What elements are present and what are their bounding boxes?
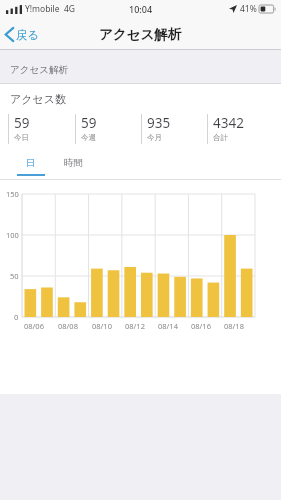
staticText: 59: [14, 114, 30, 132]
staticText: 08/18: [224, 321, 244, 331]
staticText: 今月: [147, 133, 162, 142]
staticText: 08/08: [58, 321, 78, 331]
staticText: 08/12: [125, 321, 145, 331]
staticText: 4342: [213, 114, 244, 132]
staticText: アクセス解析: [99, 26, 182, 43]
staticText: 50: [10, 271, 19, 281]
staticText: 08/06: [24, 321, 44, 331]
staticText: 時間: [64, 157, 83, 169]
staticText: 4G: [64, 3, 76, 15]
button[interactable]: 日: [14, 150, 48, 180]
staticText: 08/16: [191, 321, 211, 331]
staticText: 08/14: [158, 321, 178, 331]
staticText: アクセス解析: [10, 64, 68, 76]
staticText: 10:04: [129, 3, 153, 15]
staticText: 今週: [81, 133, 96, 142]
button[interactable]: 戻る: [0, 23, 48, 46]
staticText: 935: [147, 114, 171, 132]
staticText: 合計: [213, 133, 228, 142]
staticText: 0: [14, 312, 19, 322]
staticText: 戻る: [16, 28, 40, 42]
staticText: 41%: [240, 3, 257, 15]
staticText: Y!mobile: [25, 3, 60, 15]
staticText: 59: [81, 114, 97, 132]
staticText: 今日: [14, 133, 29, 142]
staticText: 08/10: [92, 321, 112, 331]
button[interactable]: 時間: [56, 150, 90, 180]
staticText: アクセス数: [10, 92, 67, 106]
staticText: 150: [6, 189, 19, 199]
staticText: 日: [26, 157, 36, 169]
staticText: 100: [6, 230, 19, 240]
